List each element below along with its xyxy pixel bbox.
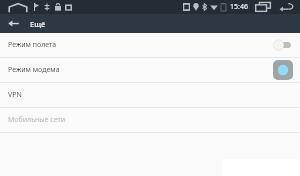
button[interactable]: Мобильные сети <box>0 108 300 132</box>
button[interactable]: VPN <box>0 83 300 107</box>
button[interactable]: Режим модема <box>0 58 300 82</box>
button[interactable]: Navigate up <box>3 15 23 32</box>
button[interactable]: Home <box>7 1 29 14</box>
staticText: Режим модема <box>8 65 270 75</box>
button[interactable]: Tethering toggle <box>270 59 296 81</box>
staticText: Режим полета <box>8 40 270 50</box>
button[interactable]: Режим полета <box>0 33 300 57</box>
staticText: VPN <box>8 90 296 100</box>
button[interactable]: Back <box>279 1 294 13</box>
staticText: 15:46 <box>230 2 248 12</box>
staticText: Ещё <box>30 19 46 29</box>
button[interactable]: Airplane mode toggle <box>270 36 296 54</box>
button[interactable]: Recent apps <box>255 1 271 13</box>
staticText: Мобильные сети <box>8 115 296 125</box>
